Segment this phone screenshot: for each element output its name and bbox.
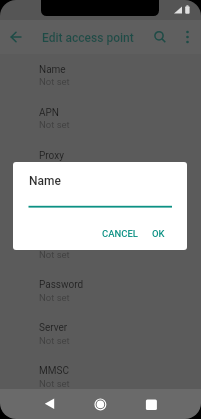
staticText: Not set: [39, 249, 70, 260]
staticText: MMSC: [39, 365, 69, 377]
staticText: OK: [152, 228, 165, 239]
staticText: Name: [29, 174, 61, 188]
staticText: Password: [39, 279, 84, 291]
staticText: Not set: [39, 292, 70, 303]
staticText: Not set: [39, 119, 70, 130]
staticText: Not set: [39, 378, 70, 389]
staticText: CANCEL: [102, 228, 138, 239]
staticText: Proxy: [39, 150, 64, 162]
staticText: Not set: [39, 335, 70, 346]
staticText: Edit access point: [42, 31, 134, 45]
staticText: APN: [39, 107, 59, 119]
staticText: Not set: [39, 76, 70, 87]
staticText: Not set: [39, 206, 70, 217]
staticText: Name: [39, 64, 66, 76]
staticText: Server: [39, 322, 68, 334]
